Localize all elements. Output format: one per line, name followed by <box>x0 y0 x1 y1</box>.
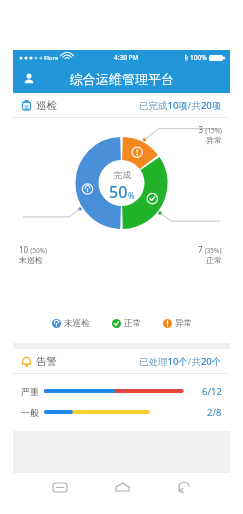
button[interactable]: Back <box>168 472 198 502</box>
staticText: 异常 <box>175 318 192 329</box>
staticText: 4:30 PM <box>114 53 139 62</box>
staticText: 严重 <box>21 386 39 397</box>
button[interactable]: 未巡检 <box>52 318 90 329</box>
button[interactable]: 正常 <box>112 318 141 329</box>
button[interactable]: Home <box>107 472 137 502</box>
staticText: 一般 <box>21 407 39 418</box>
staticText: 未巡检 <box>64 318 90 329</box>
staticText: % <box>128 190 135 201</box>
staticText: 50 <box>109 181 128 203</box>
button[interactable]: 严重 <box>13 384 230 398</box>
staticText: 3 (15%) <box>198 124 222 135</box>
button[interactable]: 巡检 <box>13 93 230 117</box>
button[interactable]: 异常 <box>163 318 192 329</box>
staticText: 正常 <box>206 255 222 265</box>
staticText: 7 (35%) <box>198 244 222 255</box>
staticText: 100% <box>190 53 207 62</box>
staticText: 已完成10项/共20项 <box>139 99 222 112</box>
staticText: 告警 <box>36 355 57 368</box>
staticText: 6/12 <box>202 385 222 398</box>
button[interactable]: Recents <box>45 472 75 502</box>
staticText: Flora <box>44 54 59 62</box>
staticText: 综合运维管理平台 <box>70 71 174 87</box>
staticText: 10 (50%) <box>19 244 47 255</box>
staticText: 完成 <box>114 170 131 181</box>
button[interactable]: 一般 <box>13 405 230 419</box>
staticText: 正常 <box>124 318 141 329</box>
staticText: 未巡检 <box>19 255 43 265</box>
staticText: 巡检 <box>36 99 57 112</box>
staticText: 异常 <box>206 135 222 145</box>
staticText: 已处理10个/共20个 <box>139 355 222 368</box>
button[interactable]: Profile <box>19 69 39 89</box>
staticText: 2/8 <box>207 406 222 419</box>
button[interactable]: 告警 <box>13 349 230 373</box>
